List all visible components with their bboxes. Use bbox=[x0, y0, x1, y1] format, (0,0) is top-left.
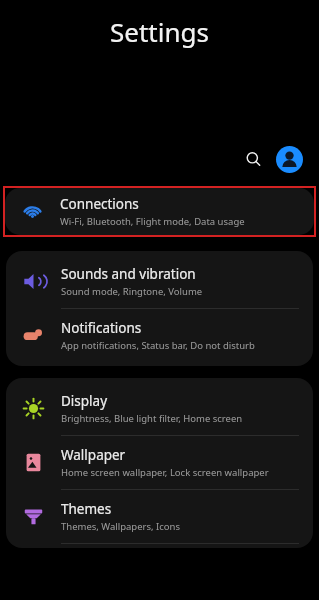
staticText: Wallpaper bbox=[61, 446, 126, 464]
staticText: Wi-Fi, Bluetooth, Flight mode, Data usag… bbox=[60, 215, 245, 228]
staticText: Connections bbox=[60, 195, 139, 213]
staticText: Themes bbox=[61, 500, 112, 518]
staticText: Sound mode, Ringtone, Volume bbox=[61, 285, 203, 298]
button[interactable]: Themes bbox=[6, 490, 313, 544]
staticText: App notifications, Status bar, Do not di… bbox=[61, 339, 255, 352]
staticText: Themes, Wallpapers, Icons bbox=[61, 520, 181, 533]
button[interactable]: Connections bbox=[5, 188, 314, 235]
staticText: Settings bbox=[0, 14, 319, 49]
button[interactable]: Sounds and vibration bbox=[6, 255, 313, 309]
button[interactable]: Display bbox=[6, 382, 313, 436]
button[interactable]: Wallpaper bbox=[6, 436, 313, 490]
button[interactable]: Search bbox=[236, 142, 270, 176]
staticText: Notifications bbox=[61, 319, 142, 337]
staticText: Home screen wallpaper, Lock screen wallp… bbox=[61, 466, 269, 479]
staticText: Brightness, Blue light filter, Home scre… bbox=[61, 412, 243, 425]
staticText: Display bbox=[61, 392, 108, 410]
button[interactable]: Account bbox=[273, 143, 305, 175]
staticText: Sounds and vibration bbox=[61, 265, 196, 283]
button[interactable]: Notifications bbox=[6, 309, 313, 362]
